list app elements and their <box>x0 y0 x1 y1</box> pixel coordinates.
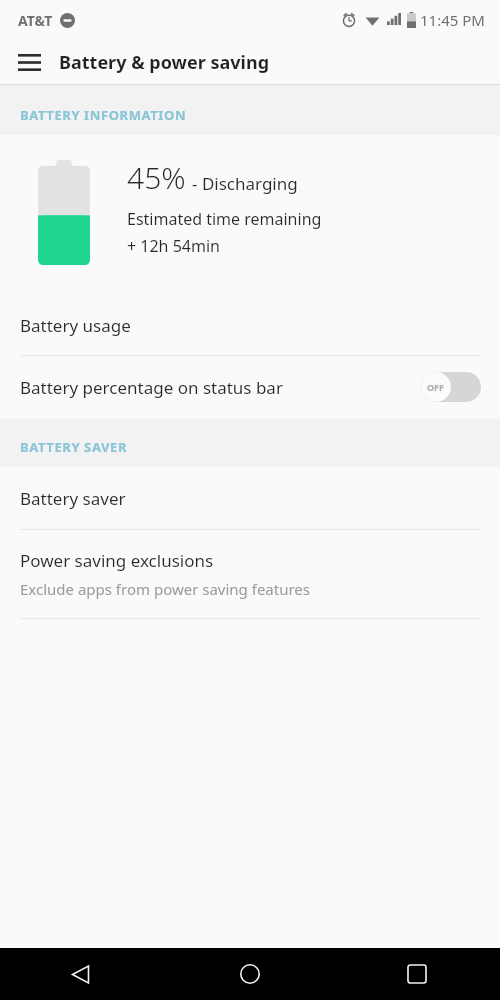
button[interactable]: Battery usage <box>0 295 500 355</box>
staticText: Battery saver <box>20 487 126 510</box>
staticText: Estimated time remaining <box>127 208 322 230</box>
staticText: BATTERY INFORMATION <box>20 106 187 124</box>
button[interactable]: Battery percentage on status bar <box>0 356 500 418</box>
staticText: Battery percentage on status bar <box>20 376 283 399</box>
staticText: Battery usage <box>20 314 131 337</box>
staticText: - Discharging <box>192 172 298 195</box>
staticText: OFF <box>427 381 445 393</box>
button[interactable]: Open navigation menu <box>8 41 50 83</box>
staticText: BATTERY SAVER <box>20 438 128 456</box>
staticText: + 12h 54min <box>127 235 220 257</box>
button[interactable]: Battery saver <box>0 467 500 529</box>
staticText: Battery & power saving <box>59 50 270 75</box>
staticText: AT&T <box>18 11 53 30</box>
button[interactable]: Back <box>0 948 166 1000</box>
button[interactable]: Home <box>166 948 333 1000</box>
staticText: Power saving exclusions <box>20 549 214 572</box>
button[interactable]: Recent apps <box>333 948 500 1000</box>
staticText: 11:45 PM <box>420 10 485 30</box>
button[interactable]: Power saving exclusions <box>0 530 500 618</box>
staticText: 45% <box>127 157 186 198</box>
staticText: Exclude apps from power saving features <box>20 579 310 599</box>
